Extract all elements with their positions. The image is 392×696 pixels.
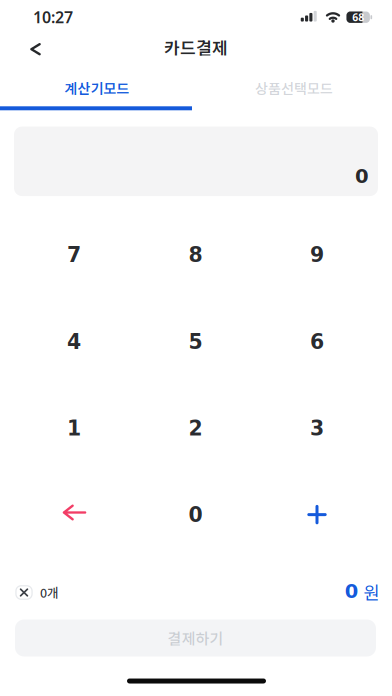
staticText: 68	[352, 10, 364, 24]
staticText: 결제하기	[167, 627, 223, 649]
button[interactable]: Clear	[15, 585, 33, 600]
staticText: 3	[310, 417, 324, 440]
button[interactable]: 계산기모드	[1, 68, 193, 108]
staticText: 계산기모드	[64, 78, 129, 98]
button[interactable]: 3	[256, 385, 377, 471]
button[interactable]: 6	[256, 299, 377, 385]
staticText: 0	[355, 165, 369, 187]
button[interactable]: 5	[135, 299, 256, 385]
staticText: 6	[310, 330, 324, 354]
button[interactable]: 상품선택모드	[198, 68, 390, 108]
staticText: 카드결제	[164, 35, 228, 59]
staticText: 4	[67, 330, 81, 354]
staticText: 2	[188, 417, 202, 440]
staticText: 9	[310, 243, 324, 267]
staticText: 1	[67, 417, 81, 440]
staticText: 10:27	[33, 6, 73, 28]
button[interactable]: Add	[256, 472, 377, 558]
staticText: 원	[363, 579, 379, 604]
button[interactable]: 8	[135, 212, 256, 298]
button[interactable]: 결제하기	[15, 619, 376, 656]
staticText: 0	[188, 503, 202, 527]
staticText: 7	[67, 243, 81, 267]
button[interactable]: 1	[13, 385, 134, 471]
button[interactable]: Back	[14, 35, 58, 63]
button[interactable]: 7	[13, 212, 134, 298]
button[interactable]: 0	[135, 472, 256, 558]
staticText: 8	[188, 243, 202, 267]
button[interactable]: 2	[135, 385, 256, 471]
button[interactable]: 9	[256, 212, 377, 298]
staticText: 0	[345, 580, 358, 602]
staticText: 5	[188, 330, 202, 354]
button[interactable]: Delete	[13, 470, 134, 556]
staticText: 0개	[40, 583, 59, 601]
button[interactable]: 4	[13, 299, 134, 385]
staticText: 상품선택모드	[255, 78, 333, 98]
